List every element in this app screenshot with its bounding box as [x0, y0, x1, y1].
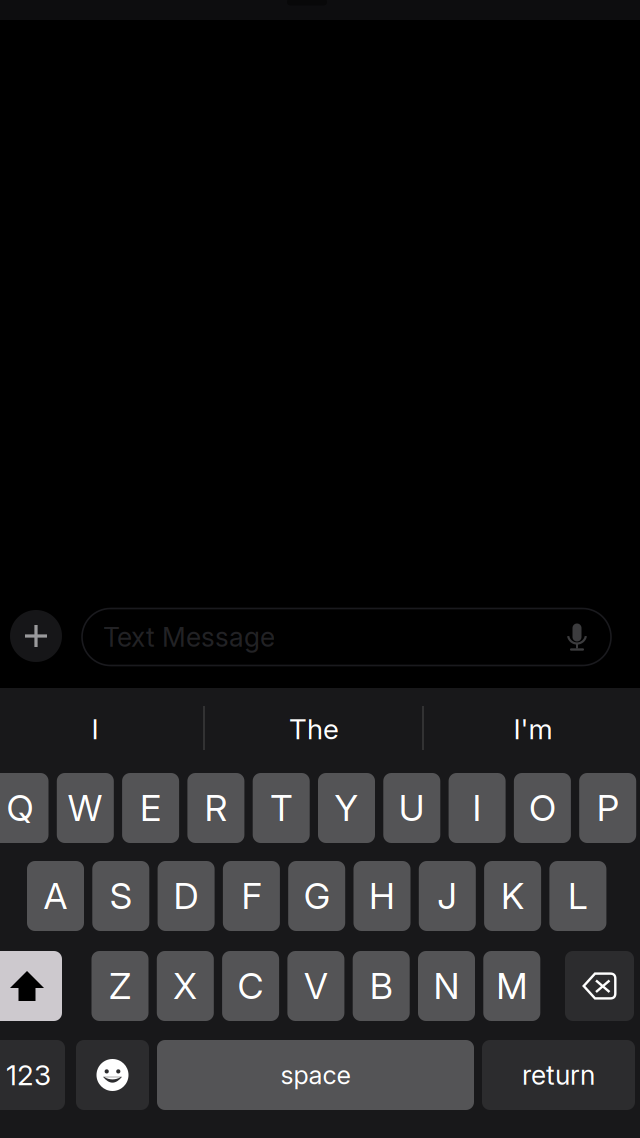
button[interactable]: J [419, 861, 476, 931]
staticText: M [496, 964, 527, 1008]
button[interactable]: A [27, 861, 84, 931]
staticText: S [110, 874, 132, 918]
button[interactable]: F [223, 861, 280, 931]
button[interactable]: Add attachment [10, 610, 62, 662]
button[interactable]: E [122, 773, 179, 843]
button[interactable]: Q [0, 773, 48, 843]
button[interactable]: The [205, 700, 423, 758]
button[interactable]: V [287, 951, 344, 1021]
staticText: Z [109, 964, 131, 1008]
staticText: return [522, 1059, 595, 1091]
button[interactable]: space [157, 1040, 474, 1110]
button[interactable]: X [157, 951, 214, 1021]
staticText: The [289, 712, 339, 746]
staticText: U [399, 786, 425, 830]
button[interactable]: U [383, 773, 440, 843]
staticText: Q [6, 786, 33, 830]
staticText: X [173, 964, 197, 1008]
staticText: L [568, 874, 588, 918]
button[interactable]: H [353, 861, 410, 931]
button[interactable]: I [449, 773, 506, 843]
staticText: 123 [6, 1058, 51, 1092]
button[interactable]: C [222, 951, 279, 1021]
button[interactable]: N [418, 951, 475, 1021]
button[interactable]: D [158, 861, 215, 931]
staticText: K [501, 874, 524, 918]
staticText: T [270, 786, 292, 830]
button[interactable]: B [353, 951, 410, 1021]
staticText: space [280, 1060, 350, 1090]
staticText: Text Message [103, 621, 275, 653]
button[interactable]: return [482, 1040, 635, 1110]
staticText: H [369, 874, 395, 918]
staticText: J [437, 874, 457, 918]
button[interactable]: W [57, 773, 114, 843]
button[interactable]: R [187, 773, 244, 843]
staticText: Y [334, 786, 358, 830]
staticText: A [43, 874, 67, 918]
staticText: I [473, 786, 482, 830]
staticText: P [597, 786, 619, 830]
button[interactable]: M [483, 951, 540, 1021]
button[interactable]: Emoji [76, 1040, 149, 1110]
staticText: V [304, 964, 328, 1008]
staticText: I'm [513, 712, 552, 746]
button[interactable]: S [92, 861, 149, 931]
button[interactable]: L [549, 861, 606, 931]
staticText: W [68, 786, 103, 830]
staticText: C [238, 964, 264, 1008]
button[interactable]: Delete [565, 951, 634, 1021]
button[interactable]: I [0, 700, 204, 758]
staticText: E [140, 786, 161, 830]
button[interactable]: G [288, 861, 345, 931]
staticText: I [91, 712, 98, 746]
button[interactable]: Z [91, 951, 148, 1021]
button[interactable]: T [253, 773, 310, 843]
staticText: N [433, 964, 459, 1008]
button[interactable]: K [484, 861, 541, 931]
staticText: D [174, 874, 199, 918]
button[interactable]: P [579, 773, 636, 843]
button[interactable]: Shift [0, 951, 62, 1021]
staticText: R [204, 786, 227, 830]
button[interactable]: O [514, 773, 571, 843]
button[interactable]: 123 [0, 1040, 65, 1110]
button[interactable]: Dictate [557, 621, 597, 667]
button[interactable]: I'm [424, 700, 640, 758]
staticText: B [370, 964, 393, 1008]
staticText: F [241, 874, 261, 918]
staticText: O [529, 786, 556, 830]
staticText: G [304, 874, 330, 918]
button[interactable]: Y [318, 773, 375, 843]
button[interactable]: Text Message [82, 608, 611, 665]
